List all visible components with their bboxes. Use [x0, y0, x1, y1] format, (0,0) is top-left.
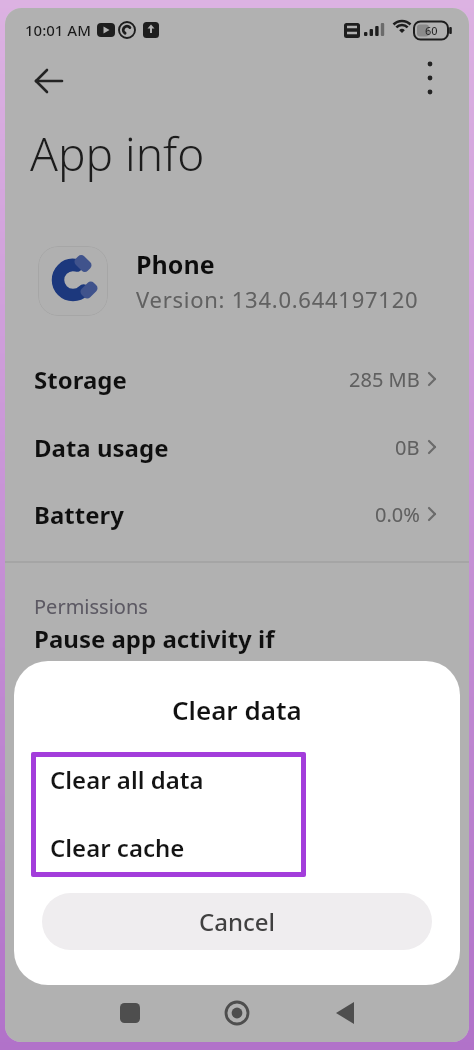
staticText: Phone [136, 247, 215, 281]
button[interactable] [407, 58, 453, 104]
staticText: Storage [34, 363, 127, 396]
staticText: 0B [395, 434, 420, 461]
button[interactable] [5, 484, 469, 544]
staticText: Clear cache [50, 831, 185, 864]
button[interactable]: Cancel [42, 893, 432, 950]
staticText: Clear data [172, 692, 302, 727]
staticText: 10:01 AM [25, 20, 91, 40]
staticText: App info [30, 122, 205, 182]
staticText: Permissions [34, 593, 148, 620]
staticText: Clear all data [50, 763, 204, 796]
staticText: Version: 134.0.644197120 [136, 284, 419, 314]
button[interactable] [21, 58, 67, 104]
button[interactable] [5, 349, 469, 409]
staticText: Cancel [199, 905, 276, 938]
staticText: Pause app activity if [34, 622, 275, 655]
button[interactable]: Clear all data [50, 754, 350, 804]
staticText: 285 MB [349, 366, 420, 393]
staticText: Data usage [34, 431, 169, 464]
button[interactable] [5, 417, 469, 477]
staticText: 60 [425, 23, 438, 38]
staticText: Battery [34, 498, 124, 531]
button[interactable]: Clear cache [50, 822, 350, 872]
staticText: 0.0% [375, 501, 420, 528]
